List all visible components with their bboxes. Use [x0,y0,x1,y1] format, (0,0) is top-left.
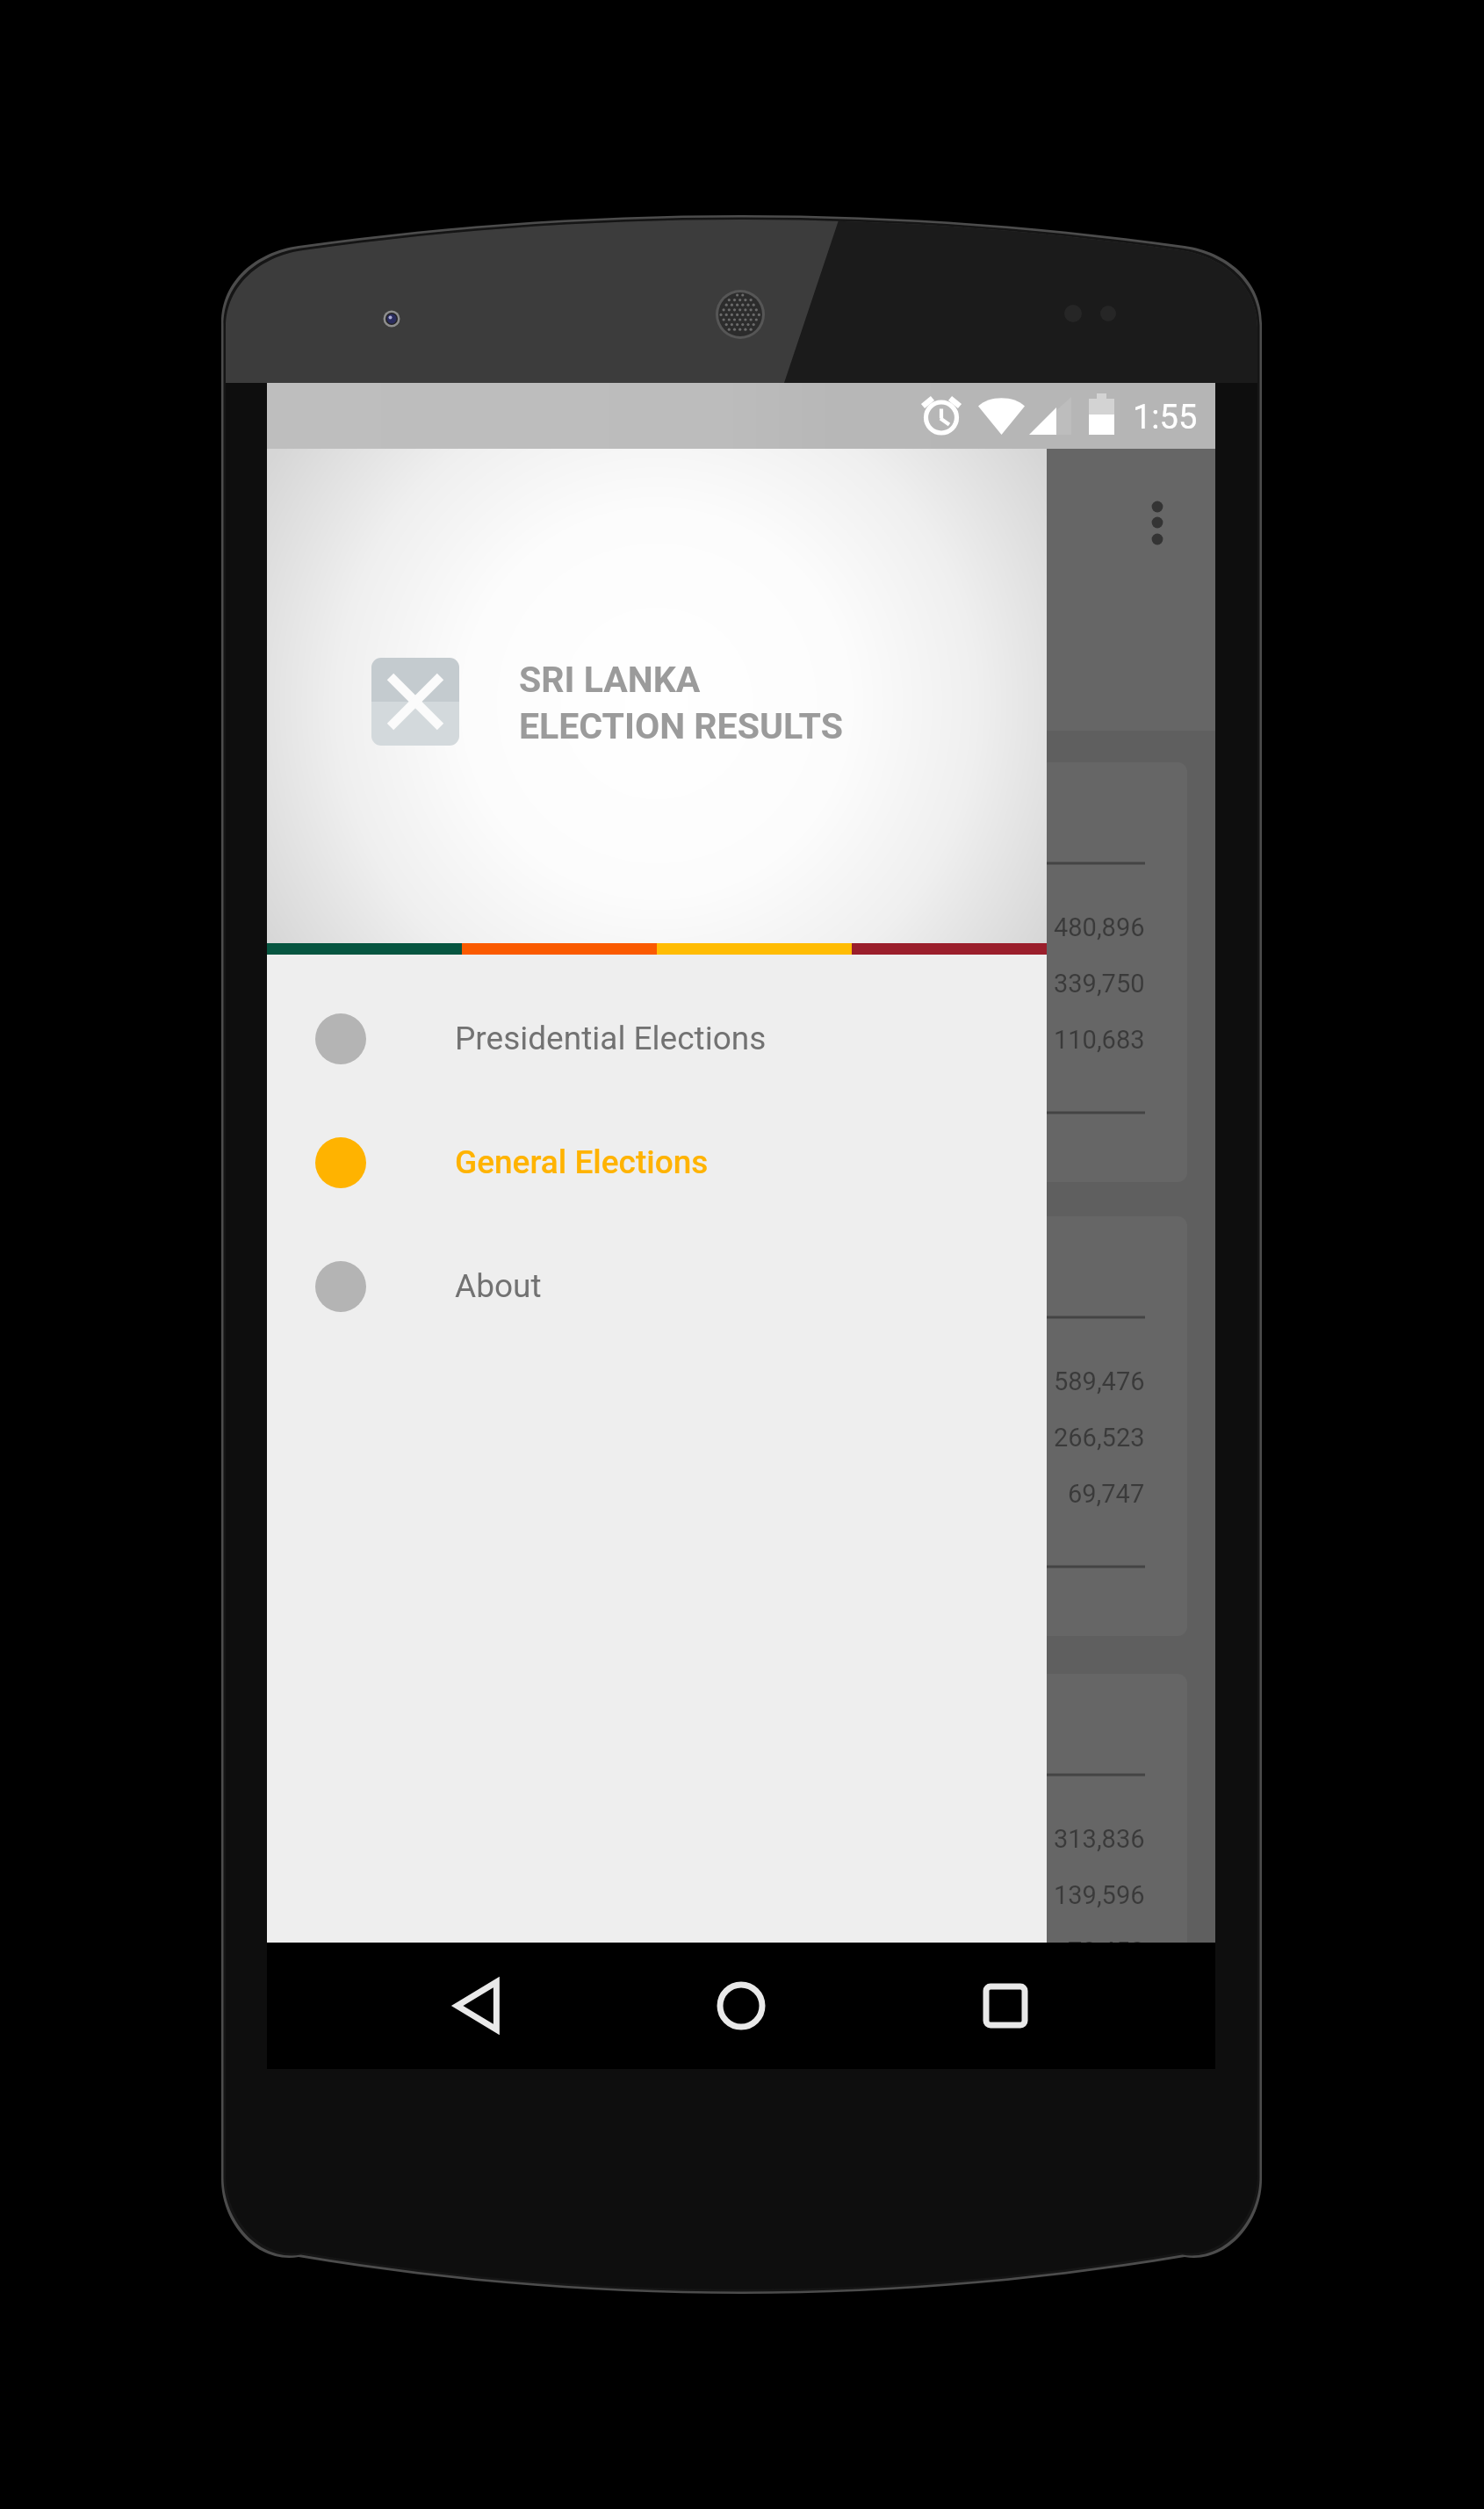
staticText: 69,747 [1068,1479,1145,1509]
button[interactable]: Presidential Elections [267,977,1047,1100]
staticText: 339,750 [1054,969,1145,999]
staticText: Presidential Elections [455,1020,767,1057]
staticText: SRI LANKA [519,659,701,701]
staticText: 139,596 [1054,1880,1145,1910]
button[interactable]: About [267,1224,1047,1348]
staticText: 1:55 [1133,398,1198,437]
button[interactable]: Home [680,1943,803,2069]
staticText: 266,523 [1054,1423,1145,1453]
button[interactable]: General Elections [267,1100,1047,1224]
staticText: 70,452 [1068,1936,1145,1943]
staticText: 589,476 [1054,1366,1145,1396]
staticText: About [455,1267,542,1305]
staticText: General Elections [455,1143,709,1181]
staticText: 110,683 [1054,1025,1145,1055]
staticText: 313,836 [1054,1824,1145,1854]
button[interactable]: Back [415,1943,538,2069]
button[interactable]: Recents [944,1943,1067,2069]
staticText: ELECTION RESULTS [519,705,843,747]
staticText: 480,896 [1054,912,1145,942]
